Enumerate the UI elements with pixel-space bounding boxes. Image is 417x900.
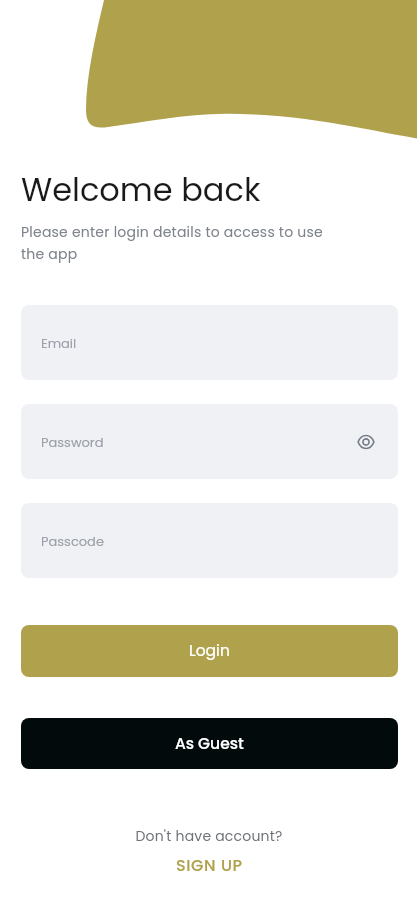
button[interactable]: Email [21, 305, 398, 380]
button[interactable]: Login [21, 625, 398, 677]
button[interactable]: Password [21, 404, 398, 479]
button[interactable]: SIGN UP [170, 852, 249, 878]
staticText: Password [41, 433, 104, 451]
staticText: Passcode [41, 532, 104, 550]
staticText: Don't have account? [135, 826, 283, 846]
staticText: Login [189, 640, 230, 662]
button[interactable]: Passcode [21, 503, 398, 578]
button[interactable]: Show password [355, 431, 377, 453]
staticText: Email [41, 334, 77, 352]
staticText: As Guest [175, 733, 244, 755]
staticText: Please enter login details to access to … [21, 222, 329, 264]
button[interactable]: As Guest [21, 718, 398, 769]
staticText: SIGN UP [176, 854, 243, 876]
staticText: Welcome back [21, 167, 261, 212]
